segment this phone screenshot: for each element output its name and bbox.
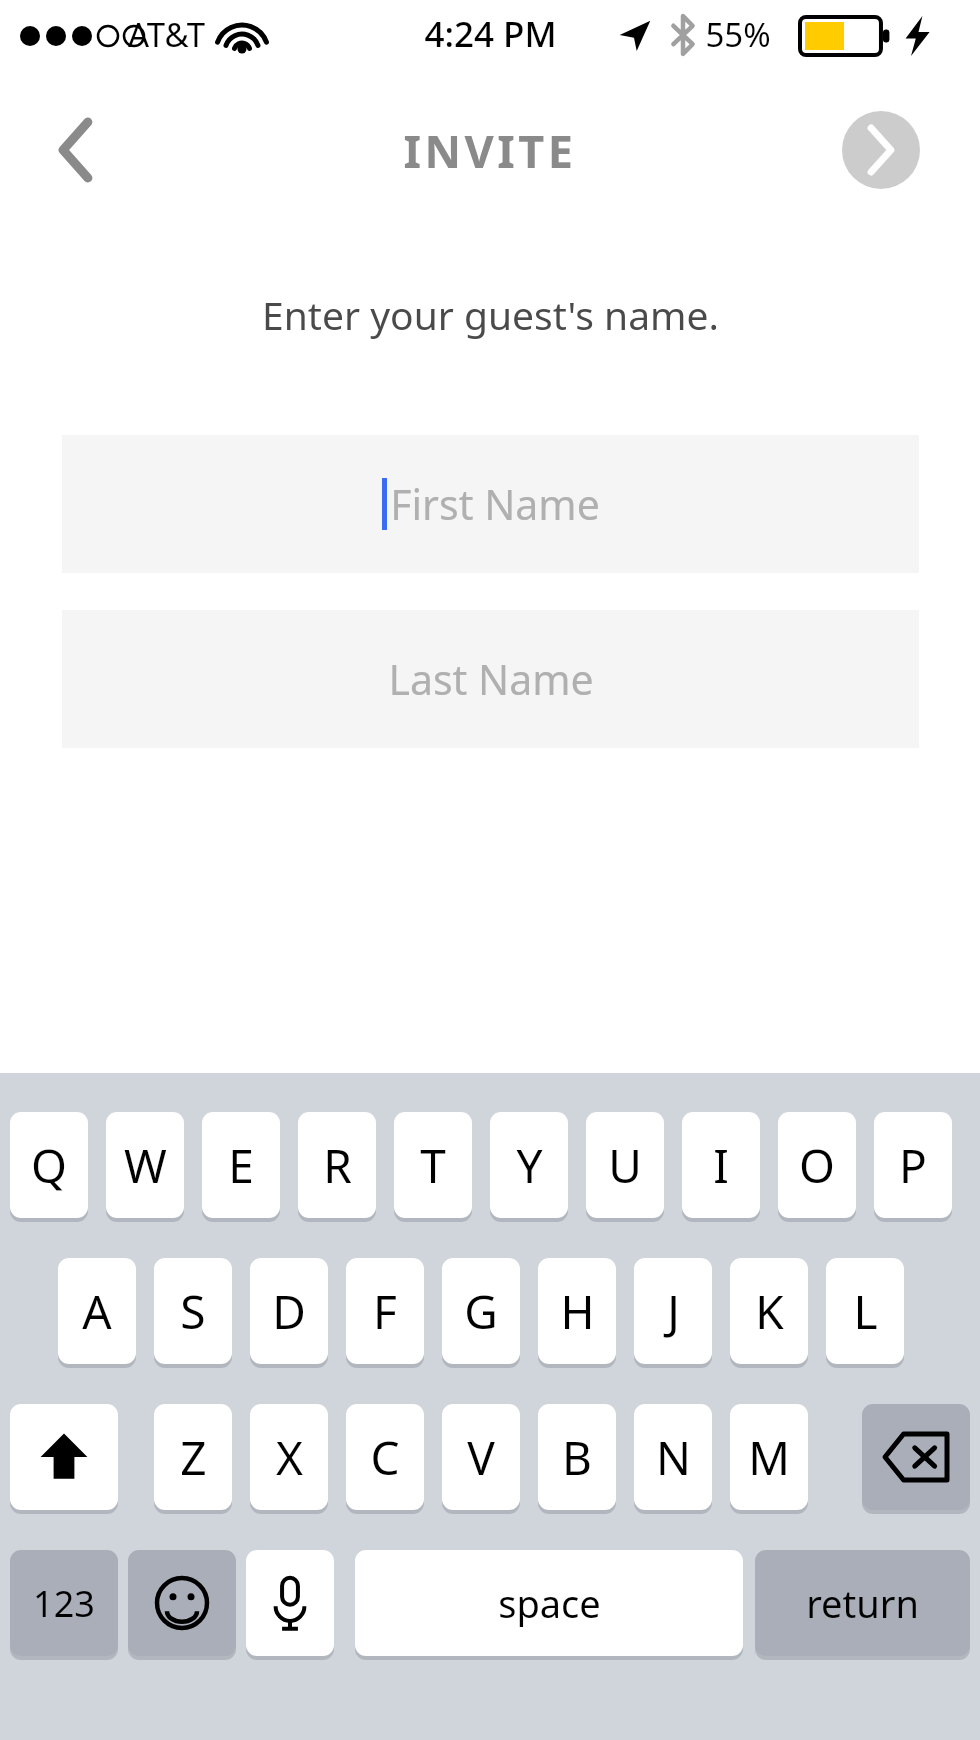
button[interactable]: Dictation — [246, 1550, 334, 1656]
button[interactable]: J — [634, 1258, 712, 1364]
button[interactable]: G — [442, 1258, 520, 1364]
button[interactable]: T — [394, 1112, 472, 1218]
staticText: C — [370, 1426, 400, 1489]
button[interactable]: Next — [842, 111, 920, 189]
staticText: D — [272, 1280, 306, 1343]
staticText: Last Name — [388, 651, 594, 707]
staticText: U — [608, 1134, 642, 1197]
staticText: K — [755, 1280, 784, 1343]
staticText: Enter your guest's name. — [262, 288, 719, 341]
button[interactable]: I — [682, 1112, 760, 1218]
button[interactable]: Backspace — [862, 1404, 970, 1510]
button[interactable]: V — [442, 1404, 520, 1510]
button[interactable]: N — [634, 1404, 712, 1510]
button[interactable]: B — [538, 1404, 616, 1510]
staticText: I — [713, 1134, 729, 1197]
button[interactable]: space — [355, 1550, 743, 1656]
staticText: A — [82, 1280, 112, 1343]
staticText: E — [228, 1134, 254, 1197]
staticText: space — [498, 1577, 601, 1629]
button[interactable]: K — [730, 1258, 808, 1364]
staticText: AT&T — [128, 12, 205, 57]
button[interactable]: Y — [490, 1112, 568, 1218]
button[interactable]: Last Name — [62, 610, 919, 748]
staticText: J — [667, 1280, 680, 1343]
button[interactable]: A — [58, 1258, 136, 1364]
button[interactable]: W — [106, 1112, 184, 1218]
staticText: L — [853, 1280, 878, 1343]
button[interactable]: Z — [154, 1404, 232, 1510]
button[interactable]: O — [778, 1112, 856, 1218]
staticText: H — [560, 1280, 595, 1343]
staticText: INVITE — [403, 120, 577, 181]
staticText: S — [180, 1280, 206, 1343]
staticText: T — [420, 1134, 446, 1197]
staticText: Z — [180, 1426, 207, 1489]
staticText: X — [276, 1426, 303, 1489]
button[interactable]: Numbers — [10, 1550, 118, 1656]
staticText: N — [656, 1426, 691, 1489]
staticText: V — [467, 1426, 495, 1489]
button[interactable]: E — [202, 1112, 280, 1218]
staticText: 55% — [705, 12, 771, 57]
button[interactable]: Q — [10, 1112, 88, 1218]
staticText: W — [124, 1134, 167, 1197]
button[interactable]: P — [874, 1112, 952, 1218]
staticText: Q — [31, 1134, 67, 1197]
button[interactable]: C — [346, 1404, 424, 1510]
staticText: First Name — [390, 476, 600, 532]
staticText: R — [323, 1134, 352, 1197]
button[interactable]: R — [298, 1112, 376, 1218]
staticText: B — [562, 1426, 592, 1489]
staticText: F — [373, 1280, 397, 1343]
staticText: return — [806, 1577, 919, 1629]
button[interactable]: return — [755, 1550, 970, 1656]
button[interactable]: Emoji — [128, 1550, 236, 1656]
staticText: P — [899, 1134, 927, 1197]
button[interactable]: H — [538, 1258, 616, 1364]
staticText: Y — [516, 1134, 543, 1197]
button[interactable]: F — [346, 1258, 424, 1364]
staticText: 4:24 PM — [424, 10, 557, 58]
button[interactable]: Back — [28, 100, 124, 200]
button[interactable]: S — [154, 1258, 232, 1364]
staticText: O — [799, 1134, 835, 1197]
staticText: G — [464, 1280, 498, 1343]
button[interactable]: X — [250, 1404, 328, 1510]
button[interactable]: Shift — [10, 1404, 118, 1510]
button[interactable]: D — [250, 1258, 328, 1364]
staticText: 123 — [33, 1579, 95, 1628]
button[interactable]: L — [826, 1258, 904, 1364]
button[interactable]: M — [730, 1404, 808, 1510]
button[interactable]: U — [586, 1112, 664, 1218]
staticText: M — [748, 1426, 790, 1489]
button[interactable]: First Name — [62, 435, 919, 573]
